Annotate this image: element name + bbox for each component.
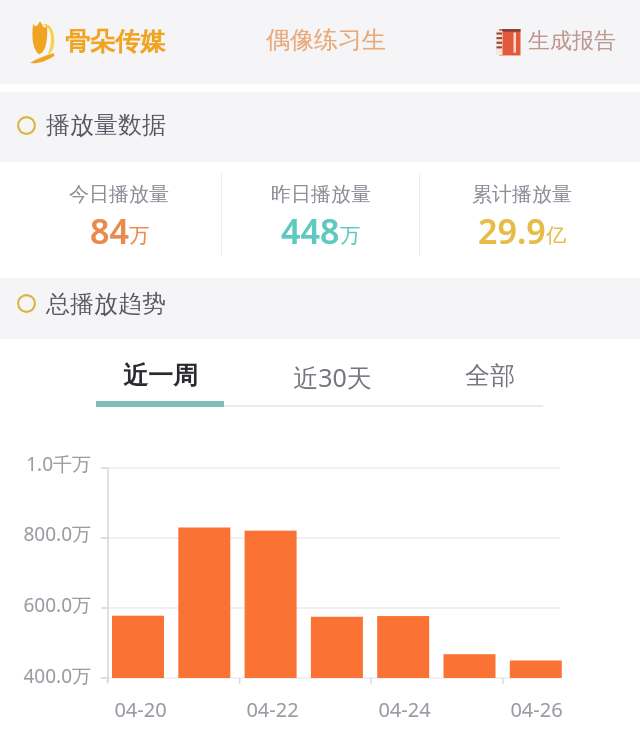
button[interactable]: 近30天 (267, 339, 397, 412)
staticText: 万 (340, 223, 360, 248)
staticText: 播放量数据 (46, 110, 166, 140)
staticText: 近30天 (293, 360, 372, 394)
staticText: 04-26 (510, 696, 563, 723)
staticText: 600.0万 (23, 592, 91, 618)
button[interactable]: 生成报告 (496, 28, 616, 56)
staticText: 04-20 (114, 696, 167, 723)
staticText: 生成报告 (528, 27, 616, 55)
staticText: 近一周 (123, 360, 198, 391)
staticText: 448 (281, 208, 340, 254)
staticText: 全部 (465, 360, 515, 391)
staticText: 骨朵传媒 (65, 26, 165, 57)
button[interactable]: 偶像练习生 (266, 25, 386, 55)
staticText: 亿 (546, 223, 566, 248)
staticText: 今日播放量 (69, 182, 169, 207)
button[interactable]: 今日播放量 (18, 162, 220, 278)
button[interactable]: 累计播放量 (421, 162, 622, 278)
button[interactable]: 近一周 (96, 339, 224, 412)
button[interactable]: 骨朵传媒 (30, 20, 165, 64)
staticText: 昨日播放量 (271, 182, 371, 207)
button[interactable]: 全部 (430, 339, 550, 412)
staticText: 800.0万 (23, 521, 91, 547)
staticText: 1.0千万 (26, 451, 91, 477)
staticText: 29.9 (478, 208, 546, 254)
staticText: 04-22 (246, 696, 299, 723)
staticText: 累计播放量 (472, 182, 572, 207)
staticText: 万 (129, 223, 149, 248)
staticText: 总播放趋势 (46, 289, 166, 319)
staticText: 400.0万 (23, 663, 91, 689)
staticText: 84 (90, 208, 129, 254)
staticText: 04-24 (378, 696, 431, 723)
other: 生成报告 (496, 28, 521, 56)
button[interactable]: 昨日播放量 (220, 162, 421, 278)
